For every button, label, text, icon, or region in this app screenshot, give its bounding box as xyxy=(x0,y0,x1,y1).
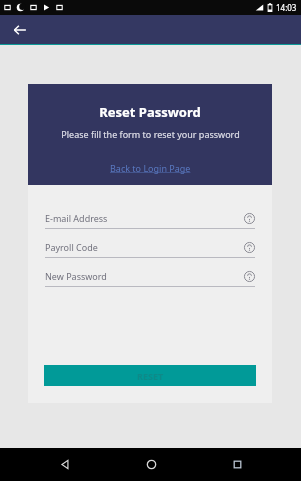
button[interactable]: Recent apps xyxy=(194,448,280,481)
staticText: Please fill the form to reset your passw… xyxy=(61,128,240,140)
staticText: New Password xyxy=(45,270,244,282)
button[interactable]: Home xyxy=(108,448,194,481)
staticText: Reset Password xyxy=(99,103,201,121)
button[interactable]: E-mail Address xyxy=(45,212,255,229)
staticText: E-mail Address xyxy=(45,212,244,224)
staticText: 14:03 xyxy=(276,2,297,13)
button[interactable]: New Password xyxy=(45,270,255,287)
staticText: Payroll Code xyxy=(45,241,244,253)
button[interactable]: Payroll Code xyxy=(45,241,255,258)
button[interactable]: Back xyxy=(22,448,108,481)
staticText: Back to Login Page xyxy=(110,162,191,174)
button[interactable]: Back xyxy=(8,18,32,42)
staticText: RESET xyxy=(137,370,164,382)
button[interactable]: Back to Login Page xyxy=(104,160,197,176)
